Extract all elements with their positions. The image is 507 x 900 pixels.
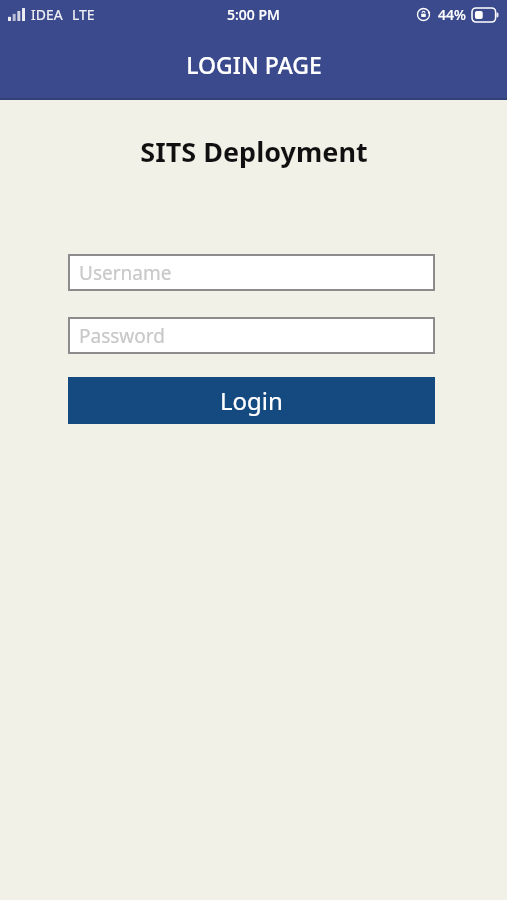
staticText: Password — [79, 323, 165, 349]
staticText: LOGIN PAGE — [186, 49, 322, 80]
button[interactable]: Login — [68, 377, 435, 424]
button[interactable]: Username — [68, 254, 435, 291]
staticText: LTE — [72, 5, 95, 24]
staticText: SITS Deployment — [140, 133, 368, 170]
staticText: Login — [220, 384, 283, 417]
staticText: 5:00 PM — [227, 5, 280, 24]
other: Rotation lock — [416, 7, 431, 22]
staticText: Username — [79, 260, 172, 286]
staticText: 44% — [438, 5, 466, 24]
button[interactable]: Password — [68, 317, 435, 354]
staticText: IDEA — [31, 5, 63, 24]
other: Battery 44 percent — [472, 8, 499, 22]
